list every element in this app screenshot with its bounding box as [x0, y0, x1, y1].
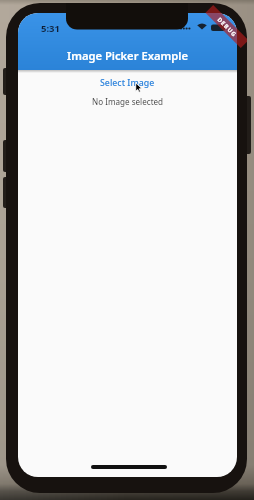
staticText: Select Image: [100, 77, 155, 89]
staticText: Image Picker Example: [67, 48, 188, 63]
button[interactable]: Select Image: [18, 76, 237, 89]
staticText: 5:31: [41, 22, 60, 34]
staticText: DEBUG: [215, 15, 239, 39]
staticText: No Image selected: [92, 96, 164, 107]
